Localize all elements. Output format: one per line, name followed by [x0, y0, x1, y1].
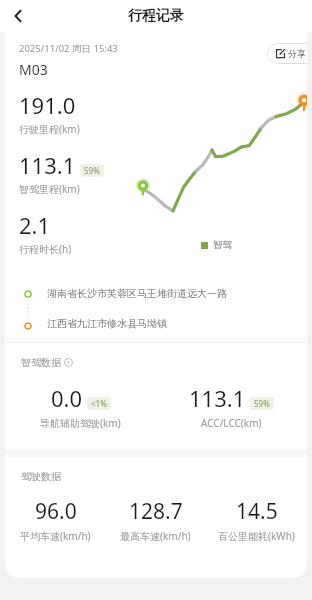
staticText: 行驶里程(km): [19, 122, 80, 136]
staticText: 59%: [254, 398, 270, 409]
staticText: 14.5: [236, 497, 278, 526]
button[interactable]: Share: [267, 43, 307, 64]
staticText: 驾驶数据: [21, 470, 61, 483]
staticText: 百公里能耗(kWh): [218, 529, 295, 543]
staticText: 智驾: [213, 239, 232, 251]
staticText: 113.1: [189, 383, 246, 413]
staticText: 128.7: [129, 497, 183, 526]
staticText: 2025/11/02 周日 15:43: [19, 42, 118, 55]
staticText: 智驾里程(km): [19, 182, 80, 196]
staticText: 江西省九江市修水县马坳镇: [47, 317, 167, 330]
staticText: 导航辅助驾驶(km): [40, 416, 121, 430]
staticText: 2.1: [19, 210, 51, 240]
staticText: <1%: [91, 398, 107, 409]
staticText: 59%: [84, 165, 100, 176]
staticText: 平均车速(km/h): [20, 529, 91, 543]
staticText: 分享: [288, 48, 306, 59]
staticText: ?: [67, 359, 70, 367]
button[interactable]: Back: [4, 2, 32, 30]
staticText: 行程记录: [128, 7, 184, 25]
staticText: 113.1: [19, 150, 76, 180]
button[interactable]: Info: [64, 358, 73, 367]
staticText: 行程时长(h): [19, 242, 72, 256]
staticText: 智驾数据: [21, 356, 61, 369]
staticText: 191.0: [19, 90, 76, 120]
staticText: 96.0: [35, 497, 77, 526]
staticText: 湖南省长沙市芙蓉区马王堆街道远大一路: [47, 287, 227, 300]
staticText: 最高车速(km/h): [120, 529, 191, 543]
staticText: 0.0: [51, 383, 83, 413]
staticText: ACC/LCC(km): [201, 416, 262, 430]
staticText: M03: [19, 60, 48, 79]
